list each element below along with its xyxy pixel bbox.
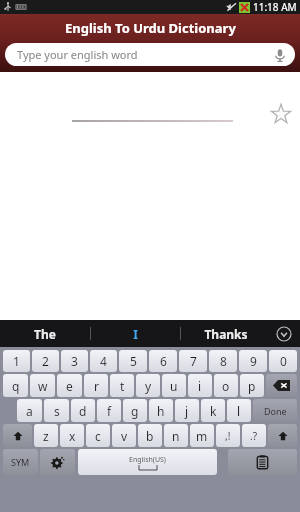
button[interactable]: r bbox=[84, 374, 108, 397]
button[interactable]: English(US) bbox=[78, 449, 217, 475]
staticText: g bbox=[131, 403, 139, 419]
staticText: k bbox=[210, 403, 217, 419]
staticText: 4 bbox=[100, 353, 107, 369]
staticText: z bbox=[43, 428, 49, 444]
button[interactable]: i bbox=[188, 374, 212, 397]
staticText: i bbox=[198, 378, 202, 394]
staticText: 9 bbox=[250, 353, 257, 369]
button[interactable]: Keyboard settings bbox=[40, 449, 75, 475]
staticText: c bbox=[95, 428, 101, 444]
button[interactable]: 7 bbox=[179, 350, 207, 372]
button[interactable]: 6 bbox=[149, 350, 177, 372]
button[interactable]: n bbox=[164, 424, 188, 447]
button[interactable]: e bbox=[57, 374, 82, 397]
staticText: o bbox=[222, 378, 230, 394]
staticText: I bbox=[133, 326, 138, 342]
staticText: u bbox=[170, 378, 178, 394]
button[interactable]: Thanks bbox=[181, 320, 270, 347]
staticText: Type your english word bbox=[17, 47, 138, 62]
staticText: t bbox=[120, 378, 125, 394]
button[interactable]: 2 bbox=[32, 350, 59, 372]
button[interactable]: Shift bbox=[3, 424, 32, 447]
staticText: .? bbox=[250, 429, 258, 443]
button[interactable]: The bbox=[0, 320, 90, 347]
staticText: w bbox=[38, 378, 48, 394]
button[interactable]: 4 bbox=[90, 350, 117, 372]
button[interactable]: f bbox=[97, 399, 121, 422]
button[interactable]: v bbox=[112, 424, 136, 447]
staticText: b bbox=[146, 428, 154, 444]
button[interactable]: q bbox=[3, 374, 28, 397]
staticText: Thanks bbox=[204, 326, 248, 342]
button[interactable]: Add to favourites bbox=[270, 103, 292, 125]
staticText: The bbox=[34, 326, 56, 342]
staticText: l bbox=[237, 403, 241, 419]
button[interactable]: k bbox=[201, 399, 225, 422]
button[interactable]: Shift bbox=[268, 424, 297, 447]
button[interactable]: I bbox=[91, 320, 180, 347]
staticText: y bbox=[145, 378, 152, 394]
staticText: 1 bbox=[13, 353, 20, 369]
button[interactable]: Clipboard bbox=[228, 449, 297, 475]
button[interactable]: x bbox=[60, 424, 84, 447]
staticText: 6 bbox=[160, 353, 167, 369]
button[interactable]: SYM bbox=[3, 449, 38, 475]
staticText: Done bbox=[264, 405, 287, 417]
button[interactable]: m bbox=[190, 424, 214, 447]
staticText: SYM bbox=[11, 456, 30, 468]
button[interactable]: w bbox=[30, 374, 55, 397]
button[interactable]: c bbox=[86, 424, 110, 447]
staticText: v bbox=[121, 428, 128, 444]
staticText: n bbox=[172, 428, 180, 444]
button[interactable]: j bbox=[175, 399, 199, 422]
staticText: 7 bbox=[190, 353, 197, 369]
button[interactable]: y bbox=[136, 374, 160, 397]
button[interactable]: 0 bbox=[269, 350, 297, 372]
button[interactable]: 9 bbox=[239, 350, 267, 372]
button[interactable]: l bbox=[227, 399, 251, 422]
staticText: x bbox=[69, 428, 76, 444]
staticText: ,! bbox=[225, 429, 231, 443]
button[interactable]: Type your english word bbox=[5, 43, 295, 66]
staticText: h bbox=[157, 403, 165, 419]
button[interactable]: 8 bbox=[209, 350, 237, 372]
staticText: 11:18 AM bbox=[253, 0, 297, 14]
button[interactable]: 3 bbox=[61, 350, 88, 372]
staticText: d bbox=[79, 403, 87, 419]
staticText: English To Urdu Dictionary bbox=[65, 19, 236, 37]
button[interactable]: h bbox=[149, 399, 173, 422]
button[interactable]: 1 bbox=[3, 350, 30, 372]
staticText: q bbox=[12, 378, 20, 394]
button[interactable]: Done bbox=[253, 399, 297, 422]
button[interactable]: .? bbox=[242, 424, 266, 447]
button[interactable]: ,! bbox=[216, 424, 240, 447]
staticText: j bbox=[185, 403, 189, 419]
button[interactable]: Expand suggestions bbox=[276, 326, 292, 342]
staticText: 2 bbox=[42, 353, 49, 369]
button[interactable]: z bbox=[34, 424, 58, 447]
staticText: p bbox=[248, 378, 256, 394]
staticText: 8 bbox=[220, 353, 227, 369]
staticText: English(US) bbox=[129, 455, 166, 465]
button[interactable]: 5 bbox=[119, 350, 147, 372]
staticText: 5 bbox=[130, 353, 137, 369]
staticText: f bbox=[107, 403, 112, 419]
staticText: a bbox=[26, 403, 33, 419]
button[interactable]: d bbox=[71, 399, 95, 422]
staticText: m bbox=[196, 428, 208, 444]
button[interactable]: Voice search bbox=[272, 47, 288, 63]
staticText: 0 bbox=[280, 353, 287, 369]
button[interactable]: a bbox=[17, 399, 42, 422]
button[interactable]: u bbox=[162, 374, 186, 397]
button[interactable]: b bbox=[138, 424, 162, 447]
button[interactable]: g bbox=[123, 399, 147, 422]
staticText: s bbox=[54, 403, 60, 419]
button[interactable]: t bbox=[110, 374, 134, 397]
button[interactable]: p bbox=[240, 374, 264, 397]
button[interactable]: s bbox=[44, 399, 69, 422]
button[interactable]: Backspace bbox=[266, 374, 297, 397]
staticText: e bbox=[66, 378, 73, 394]
staticText: 3 bbox=[71, 353, 78, 369]
staticText: r bbox=[94, 378, 99, 394]
button[interactable]: o bbox=[214, 374, 238, 397]
